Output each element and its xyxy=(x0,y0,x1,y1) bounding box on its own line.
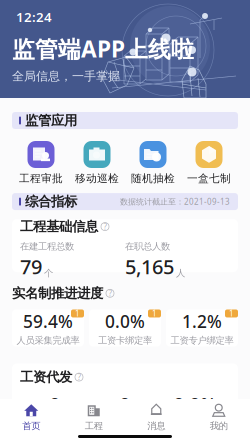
staticText: 随机抽检 xyxy=(131,172,175,185)
button[interactable]: 随机抽检 xyxy=(125,141,181,185)
staticText: 59.4% xyxy=(23,310,73,333)
staticText: 0 xyxy=(119,391,130,416)
staticText: 个 xyxy=(44,267,53,279)
staticText: 79 xyxy=(20,253,42,280)
button[interactable]: 0.0% xyxy=(89,309,161,346)
staticText: 工资代发 xyxy=(20,369,72,385)
staticText: 一盒七制 xyxy=(187,172,231,185)
staticText: 消息 xyxy=(147,420,165,432)
staticText: 0.0% xyxy=(173,391,216,416)
staticText: 在职总人数 xyxy=(125,241,170,252)
staticText: 我的 xyxy=(210,420,228,432)
staticText: 1 xyxy=(229,308,234,319)
staticText: 人 xyxy=(176,267,185,279)
button[interactable]: 工程审批 xyxy=(13,141,69,185)
staticText: 全局信息，一手掌握 xyxy=(12,69,120,83)
staticText: 5,165 xyxy=(125,253,174,280)
button[interactable]: 工程 xyxy=(62,399,125,435)
staticText: 综合指标 xyxy=(25,193,77,210)
staticText: 工程审批 xyxy=(19,172,63,185)
staticText: 在建工程总数 xyxy=(20,241,74,252)
staticText: 首页 xyxy=(22,420,40,432)
staticText: ? xyxy=(108,288,111,299)
staticText: 12:24 xyxy=(16,8,52,26)
staticText: 1 xyxy=(75,308,80,319)
staticText: ? xyxy=(77,372,80,382)
staticText: 0.0% xyxy=(105,310,145,333)
button[interactable]: 我的 xyxy=(187,399,250,435)
button[interactable]: 59.4% xyxy=(12,309,84,346)
staticText: 监管端APP上线啦 xyxy=(12,34,194,64)
staticText: 0 xyxy=(49,391,60,416)
staticText: 工资卡绑定率 xyxy=(98,335,152,346)
button[interactable]: 消息 xyxy=(125,399,187,435)
staticText: 实名制推进进度 xyxy=(12,285,103,301)
staticText: 工资专户绑定率 xyxy=(170,335,233,346)
staticText: 1.2% xyxy=(182,310,222,333)
button[interactable]: 一盒七制 xyxy=(181,141,237,185)
staticText: 监管应用 xyxy=(25,112,77,129)
staticText: ? xyxy=(103,221,106,232)
staticText: 数据统计截止至：2021-09-13 xyxy=(120,196,230,207)
staticText: 人员采集完成率 xyxy=(16,335,79,346)
staticText: 工程 xyxy=(85,420,103,432)
staticText: 1 xyxy=(152,308,157,319)
button[interactable]: 移动巡检 xyxy=(69,141,125,185)
button[interactable]: 首页 xyxy=(0,399,62,435)
button[interactable]: 1.2% xyxy=(166,309,238,346)
staticText: 工程基础信息 xyxy=(20,218,98,235)
staticText: 移动巡检 xyxy=(75,172,119,185)
